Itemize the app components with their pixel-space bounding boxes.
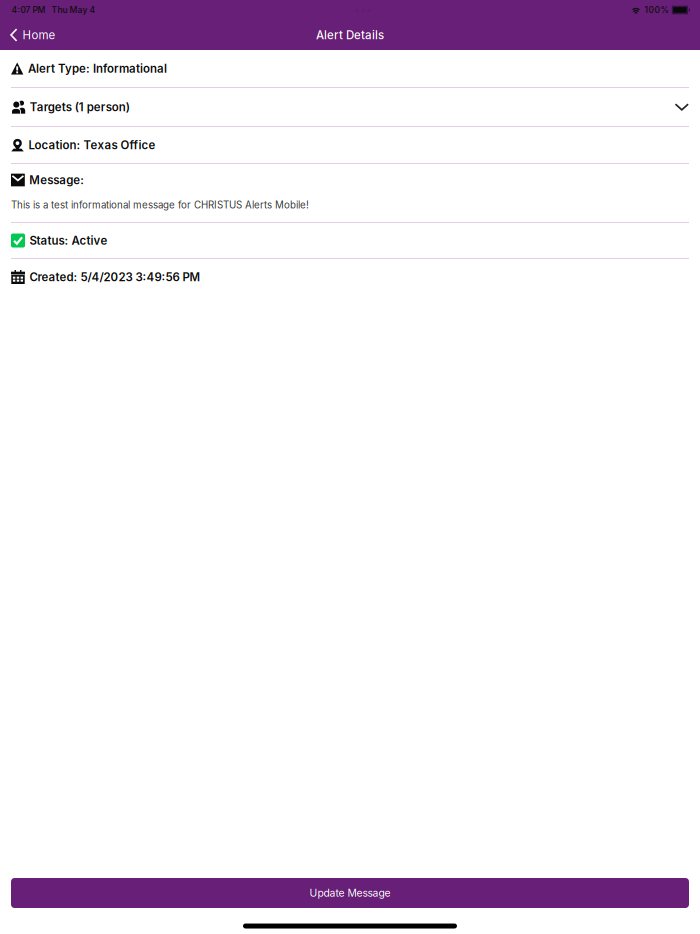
staticText: 100% xyxy=(644,5,668,15)
staticText: Location: Texas Office xyxy=(28,138,155,152)
staticText: 4:07 PM xyxy=(11,5,45,15)
button[interactable]: Targets (1 person) xyxy=(0,88,700,126)
staticText: This is a test informational message for… xyxy=(11,199,309,211)
staticText: Status: Active xyxy=(29,234,107,247)
staticText: • • • xyxy=(355,6,371,14)
staticText: Created: 5/4/2023 3:49:56 PM xyxy=(29,270,200,284)
staticText: Alert Type: Informational xyxy=(28,62,167,75)
button[interactable]: Status: Active xyxy=(0,223,700,258)
staticText: Update Message xyxy=(309,887,390,899)
button[interactable]: Update Message xyxy=(11,878,689,908)
staticText: Targets (1 person) xyxy=(30,100,130,114)
staticText: Thu May 4 xyxy=(45,5,95,15)
staticText: Home xyxy=(23,28,56,42)
staticText: Message: xyxy=(29,173,84,187)
button[interactable]: Alert Type: Informational xyxy=(0,50,700,87)
button[interactable]: Location: Texas Office xyxy=(0,127,700,163)
button[interactable]: Home xyxy=(0,20,66,50)
staticText: Alert Details xyxy=(316,28,384,42)
